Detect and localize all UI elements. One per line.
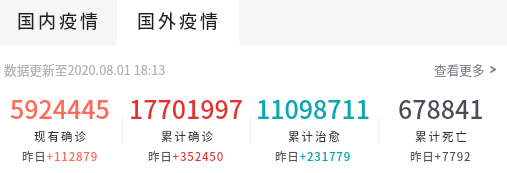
button[interactable]: 11098711 xyxy=(250,91,377,173)
staticText: 昨日+352450 xyxy=(148,148,225,165)
button[interactable]: 5924445 xyxy=(0,91,123,173)
staticText: 累计治愈 xyxy=(288,128,342,145)
staticText: 5924445 xyxy=(10,90,110,126)
staticText: 国外疫情 xyxy=(137,7,221,33)
button[interactable]: 查看更多 xyxy=(434,60,507,78)
staticText: 昨日+231779 xyxy=(275,148,352,165)
button[interactable]: 17701997 xyxy=(123,91,250,173)
button[interactable]: 国内疫情 xyxy=(0,0,117,46)
staticText: 查看更多 xyxy=(434,60,485,78)
staticText: 现有确诊 xyxy=(34,128,88,145)
other: View more xyxy=(490,66,496,73)
staticText: 17701997 xyxy=(129,90,244,126)
staticText: 国内疫情 xyxy=(17,7,101,33)
button[interactable]: 678841 xyxy=(377,91,504,173)
staticText: 累计死亡 xyxy=(415,128,469,145)
staticText: 累计确诊 xyxy=(161,128,215,145)
staticText: 昨日+112879 xyxy=(22,148,99,165)
staticText: 11098711 xyxy=(256,90,371,126)
staticText: 数据更新至2020.08.01 18:13 xyxy=(4,60,166,78)
button[interactable]: 国外疫情 xyxy=(117,0,239,46)
staticText: 昨日+7792 xyxy=(410,148,472,165)
staticText: 678841 xyxy=(398,90,484,126)
